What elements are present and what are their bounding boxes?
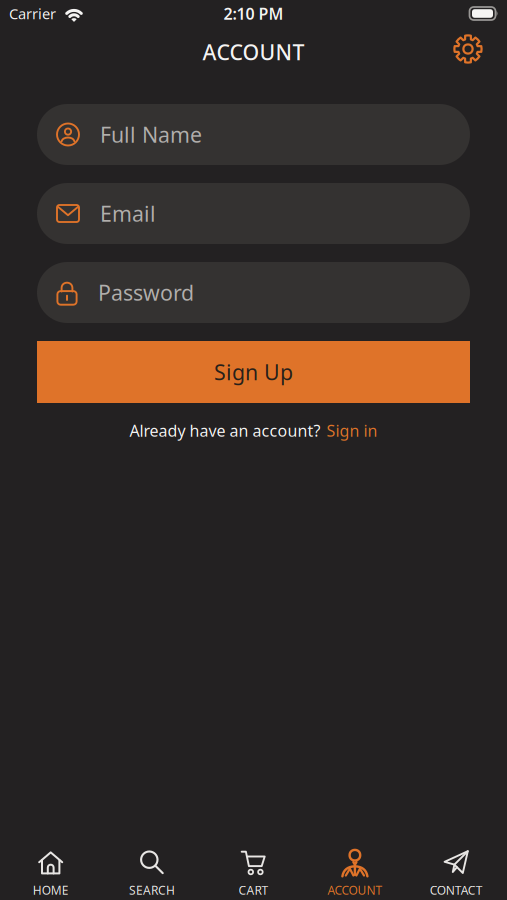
staticText: 2:10 PM: [223, 3, 283, 24]
staticText: HOME: [33, 882, 69, 898]
staticText: CONTACT: [430, 882, 483, 898]
staticText: CART: [238, 882, 268, 898]
staticText: SEARCH: [129, 882, 175, 898]
staticText: Already have an account?: [129, 420, 320, 441]
button[interactable]: CART: [203, 848, 304, 900]
button[interactable]: ACCOUNT: [304, 848, 406, 900]
staticText: Sign Up: [214, 358, 293, 386]
button[interactable]: Email: [37, 183, 470, 244]
button[interactable]: Settings: [453, 37, 483, 67]
button[interactable]: Password: [37, 262, 470, 323]
button[interactable]: SEARCH: [101, 848, 203, 900]
button[interactable]: HOME: [0, 848, 101, 900]
staticText: Sign in: [326, 420, 377, 441]
button[interactable]: CONTACT: [406, 848, 507, 900]
staticText: Email: [100, 199, 156, 228]
button[interactable]: Full Name: [37, 104, 470, 165]
staticText: ACCOUNT: [202, 38, 304, 66]
button[interactable]: Sign Up: [37, 341, 470, 403]
staticText: ACCOUNT: [327, 882, 382, 898]
staticText: Carrier: [9, 4, 56, 23]
button[interactable]: Sign in: [326, 420, 377, 441]
staticText: Password: [98, 278, 194, 307]
staticText: Full Name: [100, 120, 202, 149]
